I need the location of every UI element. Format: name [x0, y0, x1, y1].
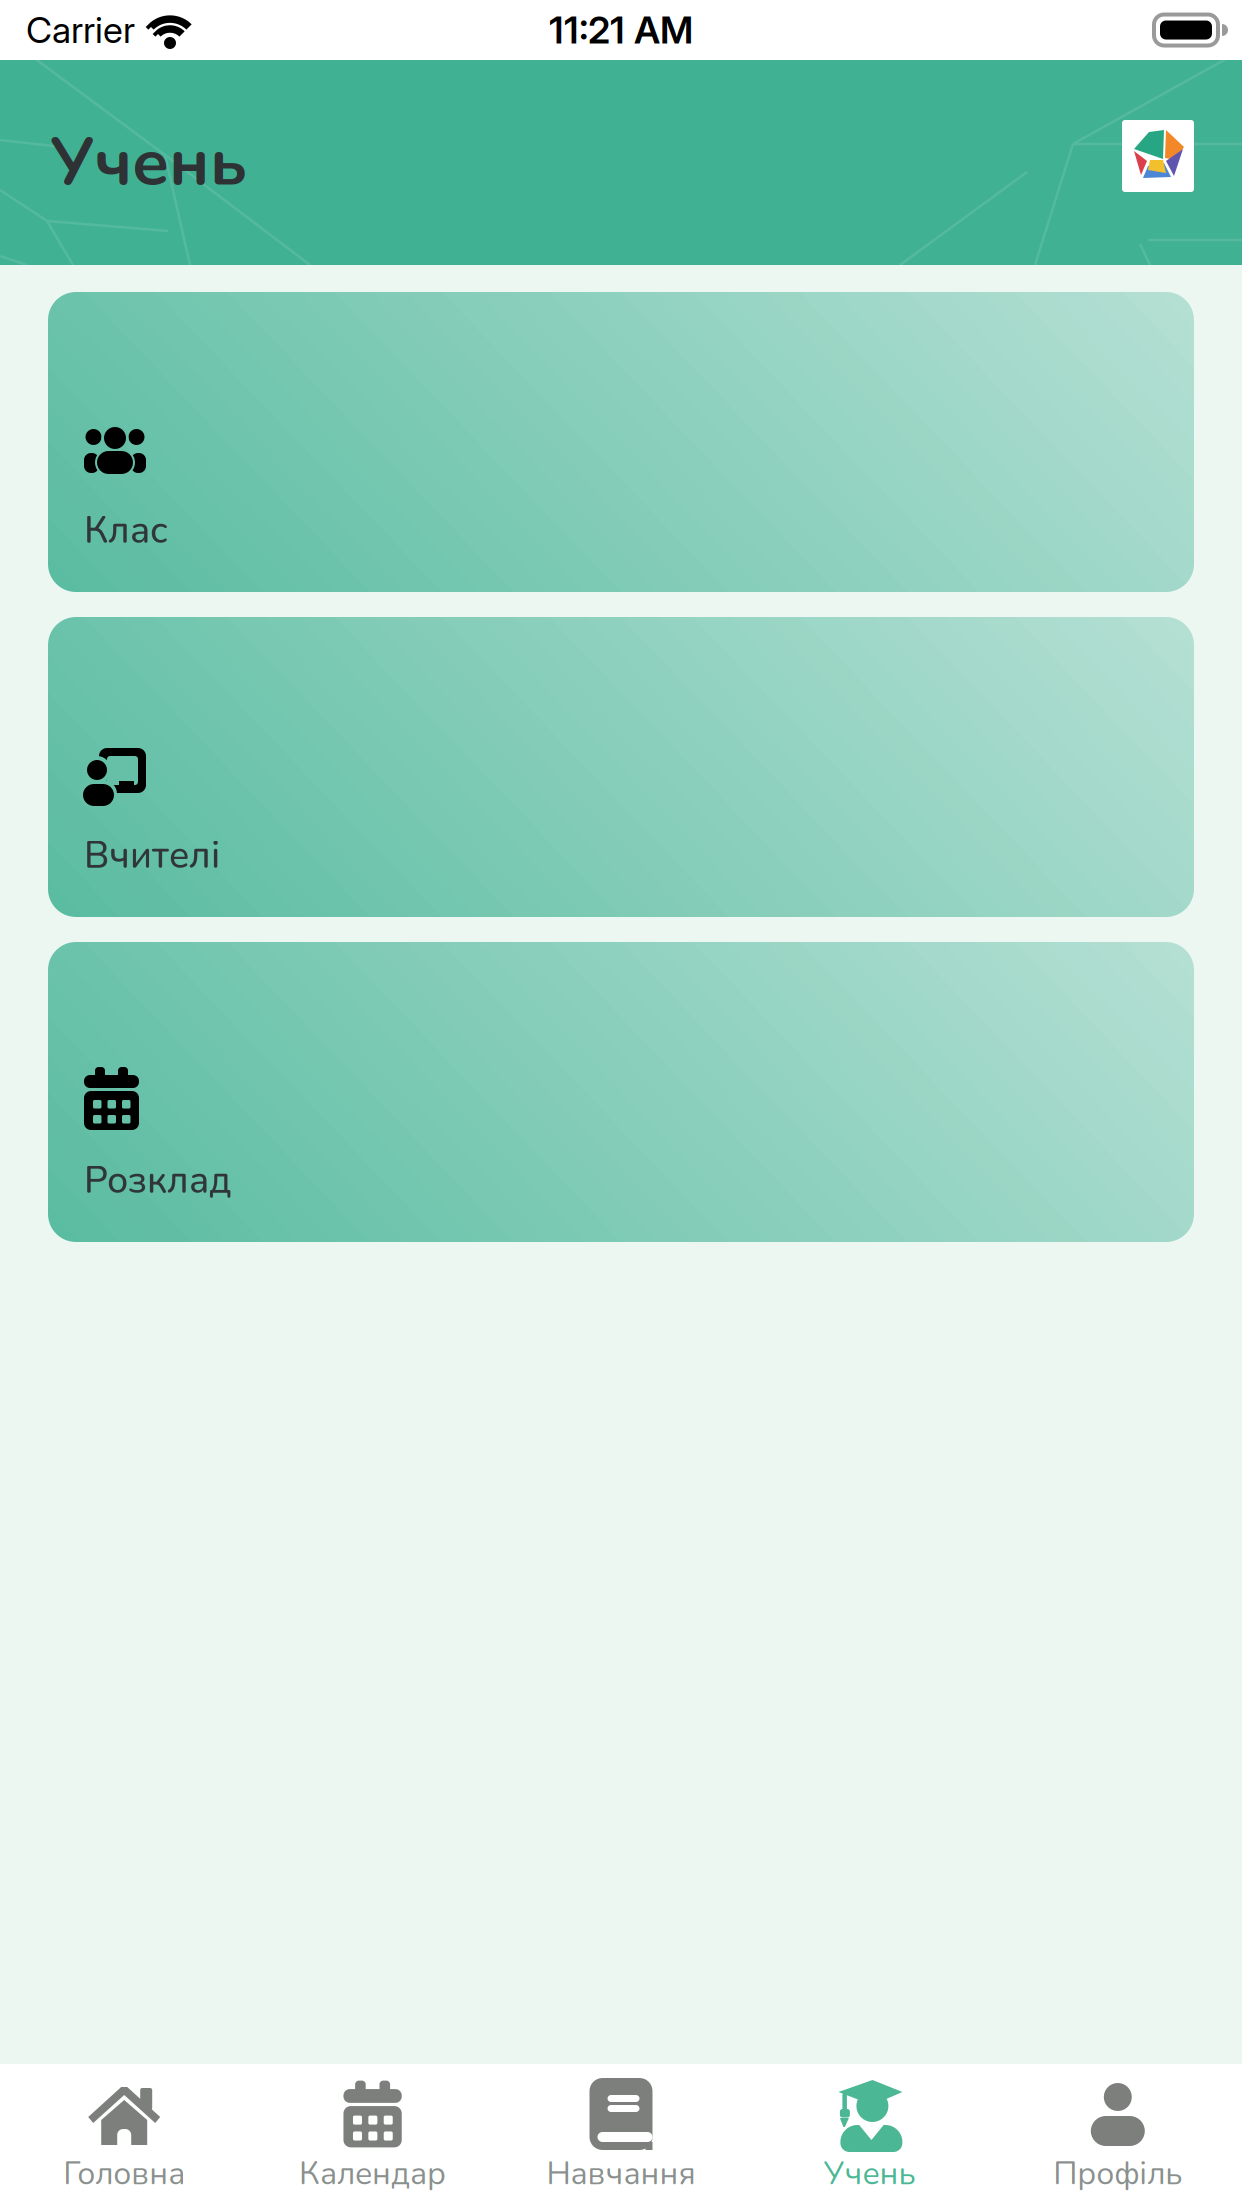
staticText: Календар [299, 2152, 446, 2196]
button[interactable]: Учень [745, 2064, 994, 2196]
staticText: Вчителі [84, 830, 220, 881]
button[interactable]: Головна [0, 2064, 248, 2196]
button[interactable]: Вчителі [48, 617, 1194, 917]
staticText: Учень [823, 2152, 915, 2196]
button[interactable]: Клас [48, 292, 1194, 592]
staticText: Розклад [84, 1155, 231, 1206]
staticText: Навчання [546, 2152, 695, 2196]
button[interactable]: Розклад [48, 942, 1194, 1242]
staticText: Профіль [1053, 2152, 1182, 2196]
button[interactable]: Навчання [497, 2064, 745, 2196]
button[interactable]: Календар [248, 2064, 497, 2196]
staticText: Клас [84, 505, 168, 556]
button[interactable]: Профіль [994, 2064, 1242, 2196]
staticText: Головна [63, 2152, 185, 2196]
staticText: Учень [50, 117, 247, 208]
staticText: 11:21 AM [549, 7, 693, 53]
button[interactable]: App logo [1122, 120, 1194, 192]
staticText: Carrier [26, 8, 135, 52]
